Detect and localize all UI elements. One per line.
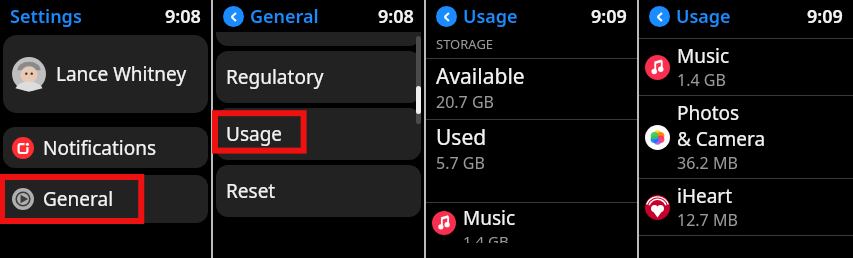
button[interactable]: iHeart <box>639 179 853 235</box>
staticText: 9:08 <box>378 4 414 29</box>
button[interactable] <box>216 32 421 46</box>
staticText: Music <box>463 205 516 231</box>
button[interactable]: Music <box>639 39 853 95</box>
button[interactable]: Back <box>436 6 457 27</box>
staticText: 20.7 GB <box>436 91 494 113</box>
staticText: 5.7 GB <box>436 152 485 174</box>
staticText: Reset <box>226 178 276 204</box>
staticText: 9:09 <box>807 4 843 29</box>
button[interactable]: Used <box>426 120 637 180</box>
staticText: Lance Whitney <box>56 61 187 87</box>
button[interactable]: Photos <box>639 96 853 178</box>
staticText: General <box>43 186 114 212</box>
staticText: Usage <box>226 121 283 147</box>
staticText: 1.4 GB <box>677 69 726 91</box>
button[interactable]: Available <box>426 59 637 119</box>
staticText: Usage <box>463 4 518 29</box>
button[interactable]: Music <box>426 203 637 243</box>
staticText: Music <box>677 43 730 69</box>
button[interactable]: Notifications <box>3 127 208 168</box>
staticText: iHeart <box>677 183 733 209</box>
button[interactable]: Usage <box>216 108 421 160</box>
button[interactable]: Back <box>649 6 670 27</box>
button[interactable]: Reset <box>216 165 421 217</box>
staticText: & Camera <box>677 126 766 152</box>
staticText: 9:08 <box>165 4 201 29</box>
staticText: Used <box>436 123 487 152</box>
button[interactable]: Lance Whitney <box>3 35 208 113</box>
button[interactable]: Back <box>223 6 244 27</box>
staticText: Notifications <box>43 135 157 161</box>
staticText: Regulatory <box>226 64 324 90</box>
staticText: 36.2 MB <box>677 152 738 174</box>
staticText: 12.7 MB <box>677 209 738 231</box>
staticText: Available <box>436 62 525 91</box>
staticText: Photos <box>677 100 740 126</box>
staticText: STORAGE <box>436 35 494 53</box>
staticText: 1.4 GB <box>463 231 509 243</box>
button[interactable]: Regulatory <box>216 51 421 103</box>
staticText: Settings <box>10 4 82 29</box>
staticText: General <box>250 4 319 29</box>
staticText: Usage <box>676 4 731 29</box>
button[interactable]: General <box>3 175 208 223</box>
staticText: 9:09 <box>591 4 627 29</box>
